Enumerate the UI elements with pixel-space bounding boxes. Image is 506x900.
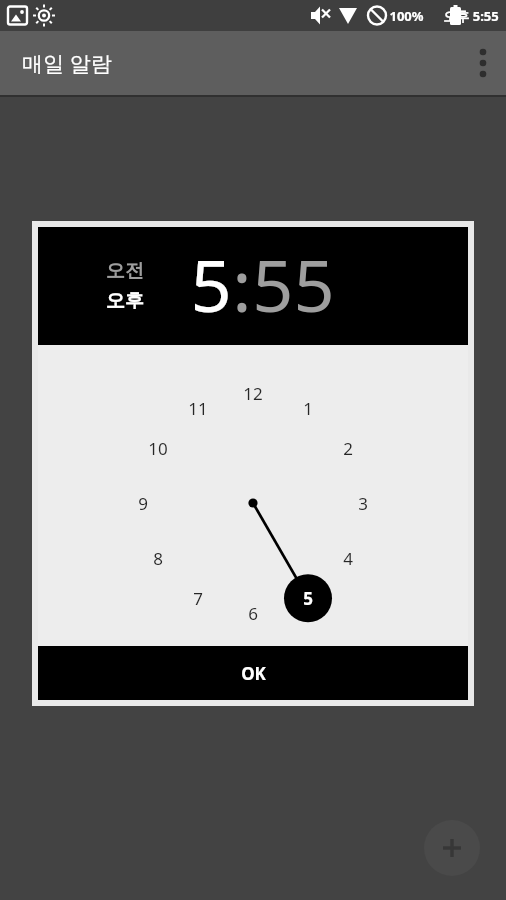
button[interactable]: 55 <box>252 235 335 333</box>
button[interactable]: 9 <box>126 490 160 516</box>
staticText: 10 <box>148 437 168 460</box>
button[interactable]: 2 <box>331 435 365 461</box>
button[interactable]: 1 <box>291 395 325 421</box>
button[interactable]: 8 <box>141 545 175 571</box>
staticText: 2 <box>343 437 353 460</box>
button[interactable]: 3 <box>346 490 380 516</box>
staticText: 6 <box>248 602 258 625</box>
button[interactable]: 오후 <box>106 289 144 313</box>
staticText: 11 <box>188 397 208 420</box>
staticText: 1 <box>303 397 313 420</box>
button[interactable]: 5 <box>291 585 325 611</box>
staticText: 8 <box>153 547 163 570</box>
button[interactable]: 7 <box>181 585 215 611</box>
staticText: 9 <box>138 492 148 515</box>
button[interactable]: 12 <box>236 380 270 406</box>
button[interactable]: 10 <box>141 435 175 461</box>
button[interactable]: 6 <box>236 600 270 626</box>
staticText: : <box>232 235 252 333</box>
staticText: 4 <box>343 547 353 570</box>
staticText: 7 <box>193 587 203 610</box>
staticText: 3 <box>358 492 368 515</box>
button[interactable]: OK <box>38 646 468 700</box>
staticText: OK <box>241 662 266 685</box>
button[interactable]: 11 <box>181 395 215 421</box>
staticText: 오후 5:55 <box>443 7 499 25</box>
staticText: 매일 알람 <box>22 49 112 78</box>
staticText: 5 <box>303 587 313 610</box>
button[interactable]: 4 <box>331 545 365 571</box>
staticText: 100% <box>389 7 424 25</box>
button[interactable]: 1 <box>38 345 468 646</box>
staticText: 12 <box>243 382 263 405</box>
button[interactable]: More options <box>458 39 506 87</box>
button[interactable]: 오전 <box>106 259 144 283</box>
button[interactable]: Add alarm <box>424 820 480 876</box>
button[interactable]: 5 <box>190 235 232 333</box>
